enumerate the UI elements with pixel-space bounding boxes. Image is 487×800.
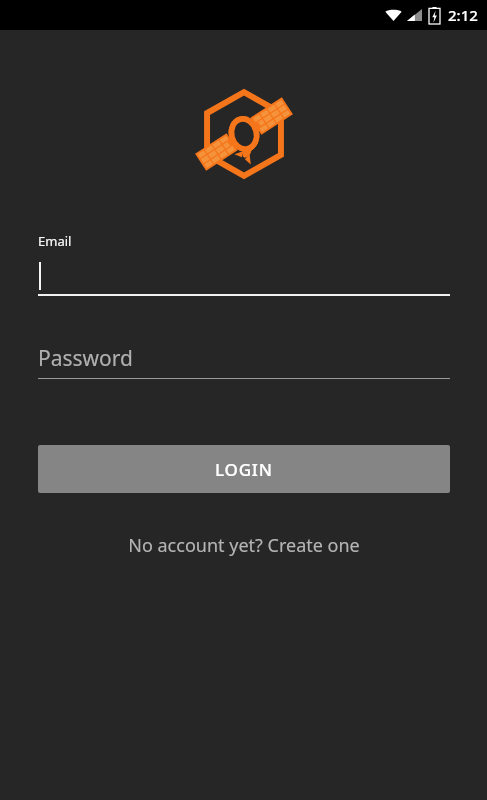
staticText: No account yet? Create one [128, 533, 360, 558]
other: Wi-Fi [385, 8, 402, 22]
button[interactable]: No account yet? Create one [116, 527, 372, 564]
staticText: Password [38, 344, 133, 373]
staticText: LOGIN [215, 458, 273, 481]
button[interactable]: Password [38, 342, 450, 379]
button[interactable]: LOGIN [38, 445, 450, 493]
other: Battery charging [429, 7, 440, 24]
other: Cellular signal [407, 8, 422, 22]
staticText: Email [38, 232, 72, 250]
staticText: 2:12 [448, 5, 478, 25]
button[interactable]: Email [38, 232, 450, 296]
